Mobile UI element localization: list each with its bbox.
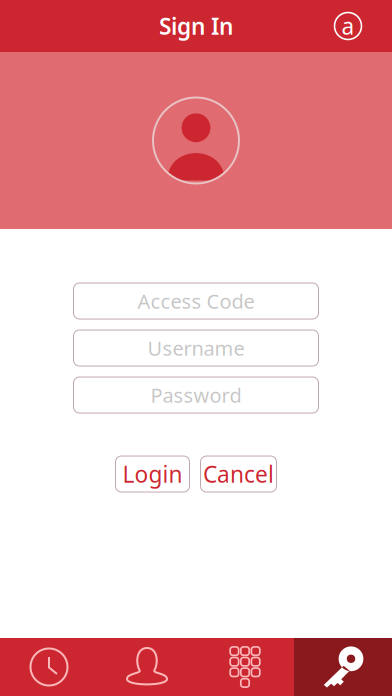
button[interactable]: Recent xyxy=(0,638,98,696)
button[interactable]: Keypad xyxy=(196,638,294,696)
staticText: a xyxy=(341,11,354,41)
button[interactable]: Username xyxy=(73,330,318,366)
staticText: Password xyxy=(150,382,241,408)
staticText: Sign In xyxy=(159,11,233,41)
staticText: Cancel xyxy=(203,459,274,489)
staticText: Login xyxy=(122,459,182,489)
staticText: Access Code xyxy=(137,288,254,314)
button[interactable]: Sign In xyxy=(294,638,392,696)
button[interactable]: Cancel xyxy=(200,456,276,492)
button[interactable]: Password xyxy=(73,377,318,413)
staticText: Username xyxy=(147,335,244,361)
button[interactable]: Account xyxy=(326,4,370,48)
button[interactable]: Contacts xyxy=(98,638,196,696)
button[interactable]: Login xyxy=(115,456,189,492)
button[interactable]: Access Code xyxy=(73,283,318,319)
